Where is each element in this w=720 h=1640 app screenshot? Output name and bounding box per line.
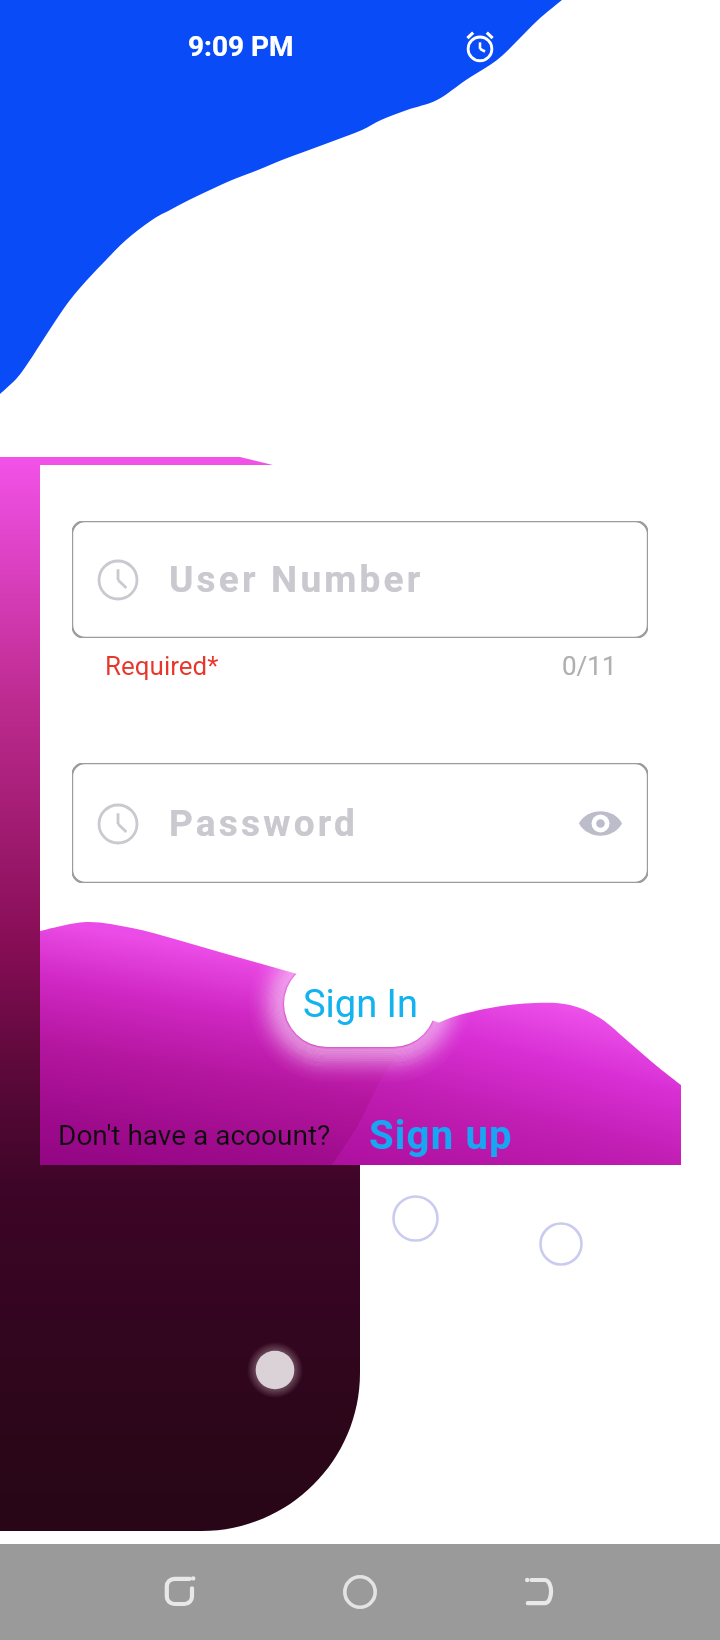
button[interactable]: Home <box>316 1548 404 1636</box>
button[interactable]: User Number <box>72 521 648 638</box>
staticText: 0/11 <box>562 651 617 681</box>
staticText: Password <box>169 802 359 845</box>
button[interactable]: Password <box>72 763 648 883</box>
staticText: User Number <box>169 558 424 601</box>
button[interactable]: Back <box>495 1548 583 1636</box>
staticText: Sign In <box>303 982 418 1027</box>
staticText: 9:09 PM <box>188 30 294 63</box>
button[interactable]: Sign up <box>369 1112 513 1159</box>
button[interactable]: Recents <box>136 1548 224 1636</box>
button[interactable]: Show password <box>578 801 623 846</box>
staticText: Sign up <box>369 1112 513 1159</box>
staticText: Required* <box>105 651 219 681</box>
button[interactable]: Sign In <box>284 961 436 1047</box>
staticText: Don't have a acoount? <box>58 1119 331 1152</box>
